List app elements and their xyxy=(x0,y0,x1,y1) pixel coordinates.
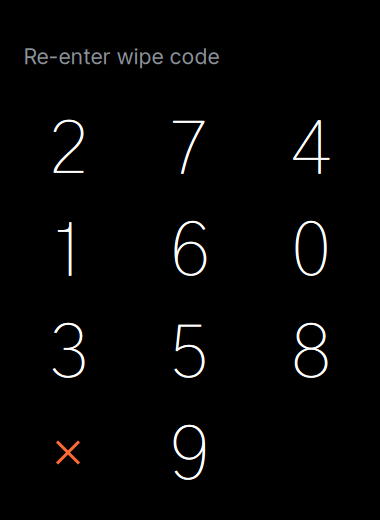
button[interactable]: 3 xyxy=(8,303,129,405)
staticText: 5 xyxy=(170,317,210,392)
staticText: 3 xyxy=(49,317,89,392)
button[interactable]: 6 xyxy=(129,201,250,303)
button[interactable]: 7 xyxy=(129,99,250,201)
staticText: 9 xyxy=(170,419,210,494)
button[interactable]: 8 xyxy=(250,303,371,405)
staticText: 4 xyxy=(291,113,331,188)
staticText: 8 xyxy=(291,317,331,392)
staticText: 7 xyxy=(170,113,210,188)
button[interactable]: 4 xyxy=(250,99,371,201)
button[interactable]: 9 xyxy=(129,405,250,507)
staticText: 1 xyxy=(49,215,89,290)
staticText: 4 xyxy=(291,113,331,188)
staticText: Re-enter wipe code xyxy=(23,43,219,69)
button[interactable]: 5 xyxy=(129,303,250,405)
staticText: 6 xyxy=(170,215,210,290)
staticText: 7 xyxy=(170,113,210,188)
staticText: 0 xyxy=(291,215,331,290)
button[interactable]: 2 xyxy=(8,99,129,201)
staticText: 9 xyxy=(170,419,210,494)
staticText: 1 xyxy=(49,215,89,290)
staticText: 3 xyxy=(49,317,89,392)
button[interactable]: 1 xyxy=(8,201,129,303)
staticText: 6 xyxy=(170,215,210,290)
staticText: 2 xyxy=(49,113,89,188)
staticText: 5 xyxy=(170,317,210,392)
staticText: 2 xyxy=(49,113,89,188)
staticText: 8 xyxy=(291,317,331,392)
button[interactable]: 0 xyxy=(250,201,371,303)
staticText: 0 xyxy=(291,215,331,290)
button[interactable]: Delete xyxy=(8,405,129,507)
